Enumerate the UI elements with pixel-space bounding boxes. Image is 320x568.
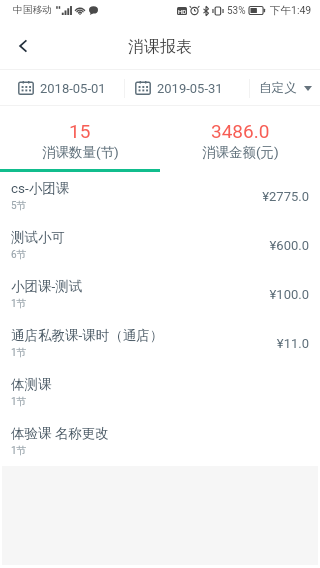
staticText: 下午1:49	[270, 4, 312, 17]
staticText: 小团课-测试	[11, 278, 83, 295]
staticText: 2019-05-31	[157, 81, 223, 96]
staticText: 3486.0	[211, 120, 270, 142]
staticText: 53%	[227, 5, 246, 17]
staticText: cs-小团课	[11, 180, 70, 197]
staticText: ¥600.0	[269, 238, 309, 253]
button[interactable]: 2019-05-31	[125, 70, 249, 106]
button[interactable]: 3486.0	[160, 106, 320, 169]
button[interactable]: 通店私教课-课时（通店）	[0, 319, 320, 368]
button[interactable]: cs-小团课	[0, 172, 320, 221]
button[interactable]: 15	[0, 106, 160, 169]
staticText: 消课报表	[128, 37, 192, 57]
staticText: ¥2775.0	[262, 189, 309, 204]
staticText: 15	[69, 120, 91, 142]
staticText: 自定义	[259, 80, 297, 96]
staticText: 消课金额(元)	[202, 144, 279, 161]
button[interactable]: 自定义	[250, 70, 320, 106]
button[interactable]: 2018-05-01	[0, 70, 124, 106]
staticText: 体验课 名称更改	[11, 425, 109, 442]
staticText: 1节	[11, 346, 27, 359]
staticText: HD	[178, 8, 187, 15]
staticText: 测试小可	[11, 229, 65, 246]
staticText: ¥100.0	[269, 287, 309, 302]
button[interactable]: 体测课	[0, 368, 320, 417]
staticText: 5节	[11, 199, 27, 212]
staticText: ¥11.0	[276, 336, 309, 351]
button[interactable]: Back	[0, 20, 46, 70]
staticText: 1节	[11, 395, 27, 408]
button[interactable]: 小团课-测试	[0, 270, 320, 319]
staticText: 体测课	[11, 376, 52, 393]
staticText: 中国移动	[13, 4, 52, 16]
button[interactable]: 测试小可	[0, 221, 320, 270]
staticText: 通店私教课-课时（通店）	[11, 327, 164, 344]
staticText: 1节	[11, 297, 27, 310]
staticText: 消课数量(节)	[42, 144, 119, 161]
staticText: 1节	[11, 444, 27, 457]
staticText: 6节	[11, 248, 27, 261]
button[interactable]: 体验课 名称更改	[0, 417, 320, 466]
staticText: 2018-05-01	[40, 81, 106, 96]
